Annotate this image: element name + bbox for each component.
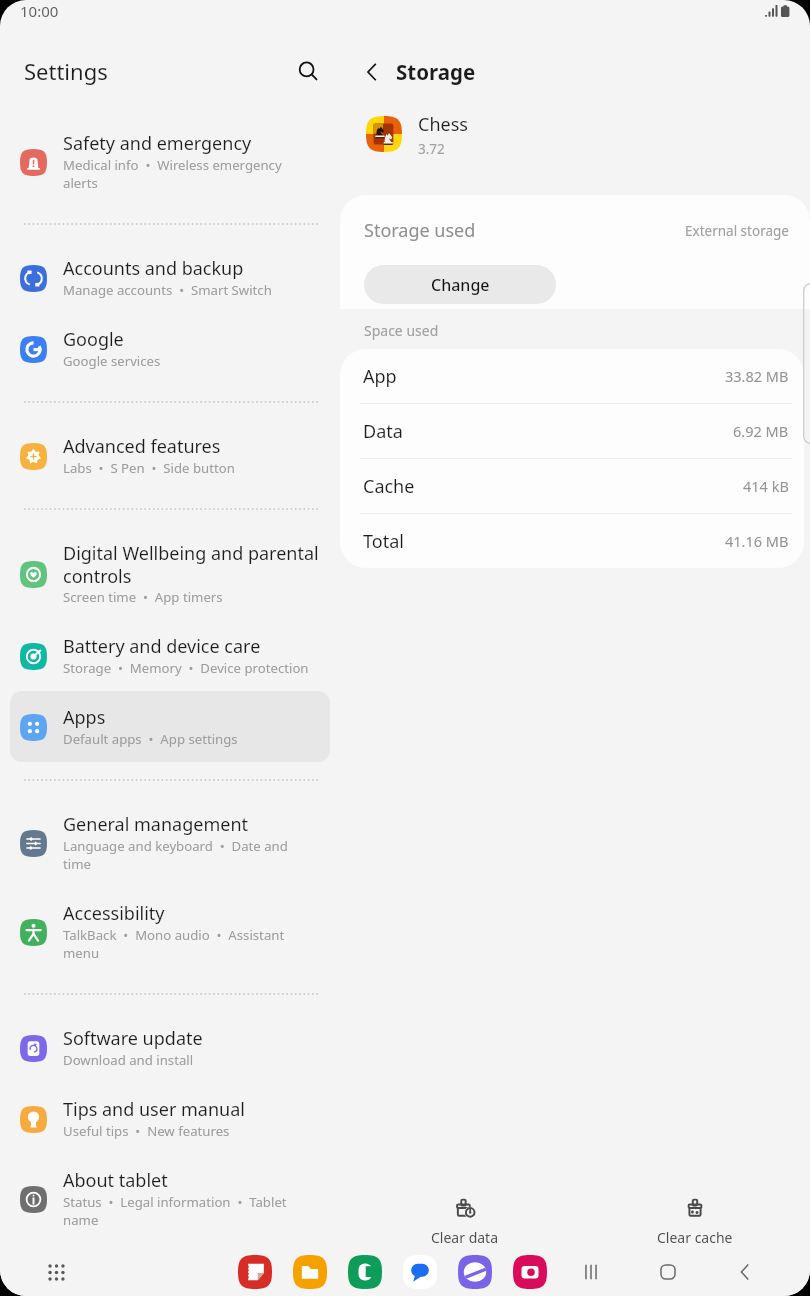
button[interactable]: camera [513, 1255, 547, 1289]
staticText: Apps [63, 705, 106, 730]
staticText: Change [431, 274, 490, 296]
button[interactable]: Clear data [400, 1196, 530, 1247]
staticText: App [363, 364, 397, 389]
staticText: 414 kB [743, 476, 789, 496]
button[interactable]: General management [10, 798, 330, 887]
staticText: Manage accounts • Smart Switch [63, 281, 272, 299]
staticText: Space used [364, 321, 439, 340]
staticText: Storage [396, 58, 476, 86]
staticText: Clear data [431, 1228, 499, 1247]
button[interactable]: Google [10, 313, 330, 384]
staticText: Chess [418, 112, 468, 137]
button[interactable]: Safety and emergency [10, 117, 330, 206]
button[interactable]: Digital Wellbeing and parental controls [10, 527, 330, 620]
staticText: Labs • S Pen • Side button [63, 459, 235, 477]
button[interactable]: Accessibility [10, 887, 330, 976]
staticText: Safety and emergency [63, 131, 252, 156]
staticText: Google [63, 327, 124, 352]
staticText: About tablet [63, 1168, 168, 1193]
button[interactable]: Apps [10, 691, 330, 762]
staticText: 6.92 MB [733, 421, 789, 441]
staticText: Accessibility [63, 901, 165, 926]
button[interactable]: internet [458, 1255, 492, 1289]
staticText: Screen time • App timers [63, 588, 223, 606]
staticText: Google services [63, 352, 161, 370]
staticText: Digital Wellbeing and parental controls [63, 541, 319, 588]
button[interactable]: Change [364, 265, 556, 304]
button[interactable]: Tips and user manual [10, 1083, 330, 1154]
button[interactable]: Data [340, 404, 804, 458]
button[interactable]: Total [340, 514, 804, 568]
staticText: Clear cache [657, 1228, 733, 1247]
staticText: Status • Legal information • Tablet name [63, 1193, 319, 1229]
button[interactable]: Advanced features [10, 420, 330, 491]
button[interactable]: messages [403, 1255, 437, 1289]
button[interactable]: Clear cache [630, 1196, 760, 1247]
button[interactable]: App [340, 349, 804, 403]
staticText: Accounts and backup [63, 256, 244, 281]
staticText: Storage • Memory • Device protection [63, 659, 309, 677]
staticText: Default apps • App settings [63, 730, 238, 748]
staticText: Language and keyboard • Date and time [63, 837, 319, 873]
button[interactable]: Search [287, 50, 329, 92]
staticText: 41.16 MB [725, 531, 789, 551]
button[interactable]: files [293, 1255, 327, 1289]
staticText: Download and install [63, 1051, 194, 1069]
staticText: 10:00 [20, 1, 59, 21]
button[interactable]: All apps [44, 1260, 68, 1284]
staticText: Medical info • Wireless emergency alerts [63, 156, 319, 192]
staticText: General management [63, 812, 249, 837]
staticText: External storage [685, 222, 789, 240]
staticText: 33.82 MB [725, 366, 789, 386]
staticText: Data [363, 419, 403, 444]
button[interactable]: Battery and device care [10, 620, 330, 691]
button[interactable]: Back [732, 1259, 758, 1285]
staticText: Cache [363, 474, 415, 499]
button[interactable]: About tablet [10, 1154, 330, 1243]
staticText: Useful tips • New features [63, 1122, 230, 1140]
staticText: Tips and user manual [63, 1097, 245, 1122]
button[interactable]: Home [655, 1259, 681, 1285]
button[interactable]: Accounts and backup [10, 242, 330, 313]
staticText: Advanced features [63, 434, 221, 459]
staticText: Settings [24, 56, 108, 86]
button[interactable]: Recents [578, 1259, 604, 1285]
staticText: Total [363, 529, 404, 554]
staticText: Software update [63, 1026, 203, 1051]
button[interactable]: Cache [340, 459, 804, 513]
button[interactable]: notes [238, 1255, 272, 1289]
button[interactable]: Software update [10, 1012, 330, 1083]
button[interactable]: Back [351, 51, 393, 93]
staticText: 3.72 [418, 140, 445, 156]
staticText: Storage used [364, 218, 476, 243]
staticText: Battery and device care [63, 634, 261, 659]
staticText: TalkBack • Mono audio • Assistant menu [63, 926, 319, 962]
button[interactable]: phone [348, 1255, 382, 1289]
